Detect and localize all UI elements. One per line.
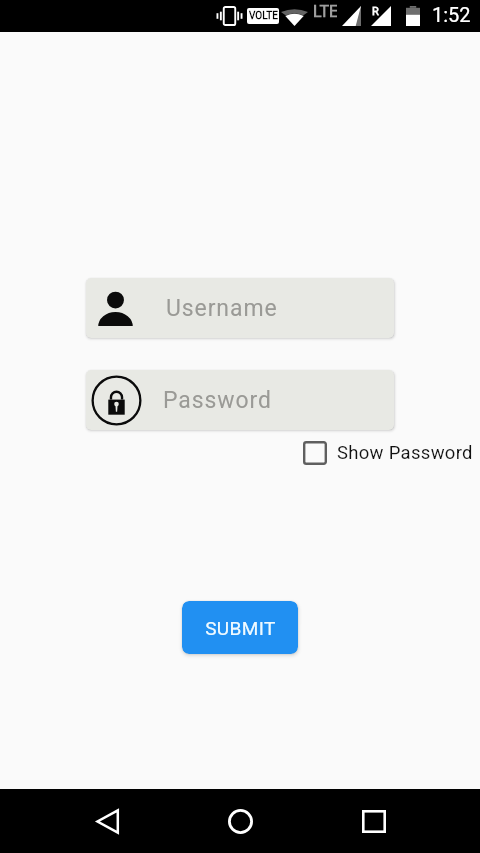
staticText: LTE (313, 2, 337, 21)
button[interactable]: Password (86, 370, 394, 430)
staticText: Show Password (337, 442, 473, 464)
staticText: SUBMIT (205, 617, 276, 639)
button[interactable]: Back (73, 789, 141, 853)
staticText: 1:52 (432, 3, 471, 26)
button[interactable]: Username (86, 278, 394, 338)
staticText: Password (163, 387, 272, 414)
staticText: R (372, 5, 379, 18)
staticText: VOLTE (249, 10, 278, 22)
button[interactable]: Recents (340, 789, 408, 853)
button[interactable]: Home (206, 789, 274, 853)
staticText: Username (166, 295, 278, 322)
button[interactable]: Show Password (295, 437, 480, 469)
button[interactable]: SUBMIT (182, 601, 298, 654)
